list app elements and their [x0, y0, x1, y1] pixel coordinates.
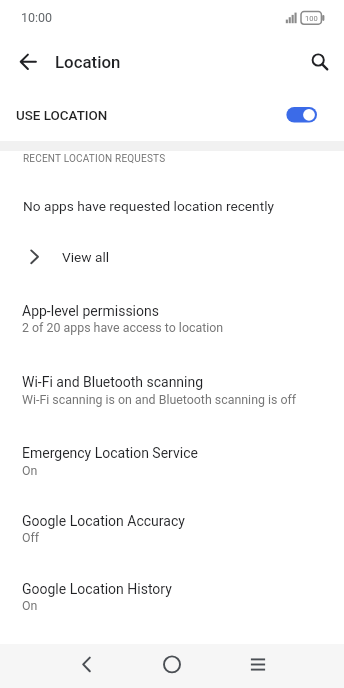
- button[interactable]: [0, 561, 344, 623]
- staticText: Wi-Fi scanning is on and Bluetooth scann…: [22, 392, 297, 407]
- staticText: USE LOCATION: [16, 108, 108, 124]
- staticText: 10:00: [21, 10, 53, 25]
- staticText: App-level permissions: [22, 303, 159, 319]
- button[interactable]: [0, 354, 344, 416]
- button[interactable]: [234, 642, 282, 688]
- button[interactable]: [0, 283, 344, 345]
- staticText: 100: [305, 14, 318, 23]
- staticText: 2 of 20 apps have access to location: [22, 320, 224, 335]
- staticText: Location: [55, 52, 121, 72]
- button[interactable]: [0, 90, 344, 141]
- staticText: No apps have requested location recently: [23, 198, 274, 214]
- button[interactable]: [302, 44, 334, 76]
- button[interactable]: [12, 46, 44, 78]
- staticText: On: [22, 598, 38, 613]
- staticText: Wi-Fi and Bluetooth scanning: [22, 374, 204, 390]
- button[interactable]: [0, 240, 344, 274]
- staticText: Google Location Accuracy: [22, 513, 185, 529]
- staticText: Google Location History: [22, 581, 172, 597]
- staticText: Off: [22, 530, 40, 545]
- staticText: RECENT LOCATION REQUESTS: [23, 153, 166, 165]
- button[interactable]: [148, 642, 196, 688]
- button[interactable]: [62, 642, 110, 688]
- staticText: On: [22, 463, 38, 478]
- button[interactable]: [0, 425, 344, 487]
- staticText: View all: [62, 249, 110, 265]
- button[interactable]: [0, 493, 344, 555]
- staticText: Emergency Location Service: [22, 445, 198, 461]
